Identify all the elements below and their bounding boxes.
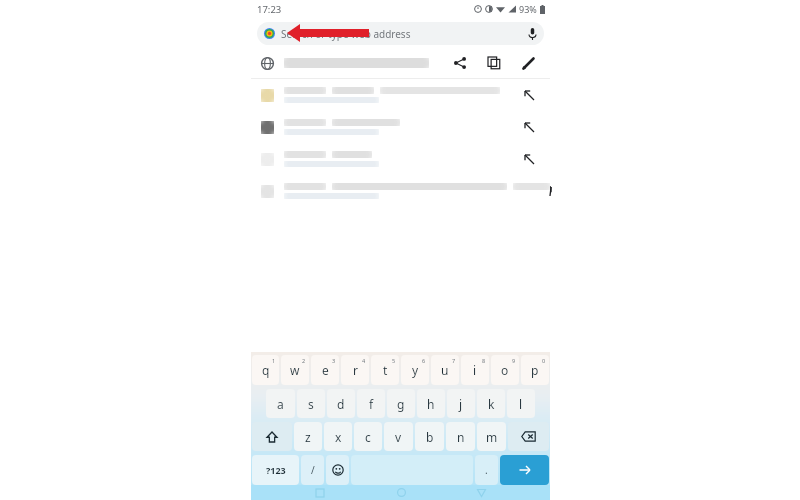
staticText: i [473,362,477,378]
button[interactable]: p [521,355,549,385]
staticText: 1 [272,357,276,364]
button[interactable]: k [477,389,505,418]
staticText: t [383,362,388,378]
staticText: d [337,396,345,412]
staticText: f [369,396,374,412]
staticText: x [335,429,342,445]
staticText: q [262,362,270,378]
button[interactable]: Share [450,53,470,73]
button[interactable]: Emoji [326,455,349,485]
staticText: 8 [482,357,486,364]
button[interactable]: l [507,389,535,418]
button[interactable]: n [446,422,475,451]
button[interactable]: Copy [484,53,504,73]
button[interactable]: / [301,455,324,485]
button[interactable]: ?123 [252,455,299,485]
button[interactable]: q [252,355,279,385]
staticText: 7 [452,357,456,364]
staticText: 17:23 [257,3,282,16]
button[interactable]: Fill query [251,79,550,111]
button[interactable]: r [341,355,369,385]
staticText: y [412,362,419,378]
staticText: w [290,362,300,378]
staticText: / [311,463,315,477]
staticText: a [277,396,284,412]
button[interactable]: Fill query [518,84,540,106]
button[interactable]: t [371,355,399,385]
staticText: m [486,429,498,445]
staticText: e [322,362,329,378]
button[interactable]: g [387,389,415,418]
staticText: 2 [302,357,306,364]
button[interactable]: Share [251,48,550,78]
staticText: r [353,362,358,378]
staticText: h [427,396,435,412]
button[interactable]: m [477,422,506,451]
button[interactable]: Go [500,455,549,485]
button[interactable]: Fill query [251,175,550,207]
staticText: Search or type web address [281,27,411,41]
staticText: 3 [332,357,336,364]
staticText: k [488,396,495,412]
staticText: 9 [512,357,516,364]
button[interactable]: Search or type web address [257,22,544,45]
button[interactable]: Fill query [251,143,550,175]
staticText: j [459,396,463,412]
button[interactable]: Shift [252,422,292,451]
staticText: p [531,362,539,378]
staticText: l [519,396,523,412]
staticText: b [426,429,434,445]
button[interactable]: s [297,389,325,418]
button[interactable]: . [475,455,498,485]
button[interactable]: Back [470,485,492,500]
button[interactable]: Edit [518,53,538,73]
button[interactable]: i [461,355,489,385]
staticText: u [441,362,449,378]
staticText: g [397,396,405,412]
button[interactable]: Backspace [508,422,549,451]
button[interactable]: c [354,422,382,451]
staticText: 93% [519,3,537,15]
staticText: . [485,463,488,477]
button[interactable]: a [266,389,295,418]
button[interactable]: d [327,389,355,418]
button[interactable]: w [281,355,309,385]
staticText: v [395,429,402,445]
button[interactable]: Fill query [251,111,550,143]
button[interactable]: Fill query [518,116,540,138]
staticText: s [308,396,314,412]
button[interactable]: u [431,355,459,385]
button[interactable]: y [401,355,429,385]
staticText: n [457,429,465,445]
button[interactable]: x [324,422,352,451]
button[interactable]: Home [390,485,412,500]
staticText: 5 [392,357,396,364]
staticText: 6 [422,357,426,364]
button[interactable]: b [415,422,444,451]
staticText: o [501,362,509,378]
button[interactable]: j [447,389,475,418]
staticText: c [365,429,371,445]
button[interactable]: v [384,422,413,451]
button[interactable]: h [417,389,445,418]
button[interactable]: z [294,422,322,451]
button[interactable]: Recents [309,485,331,500]
button[interactable]: e [311,355,339,385]
staticText: 4 [362,357,366,364]
staticText: ?123 [266,464,286,476]
button[interactable]: f [357,389,385,418]
button[interactable]: Fill query [518,148,540,170]
staticText: z [305,429,311,445]
button[interactable]: o [491,355,519,385]
staticText: 0 [542,357,546,364]
